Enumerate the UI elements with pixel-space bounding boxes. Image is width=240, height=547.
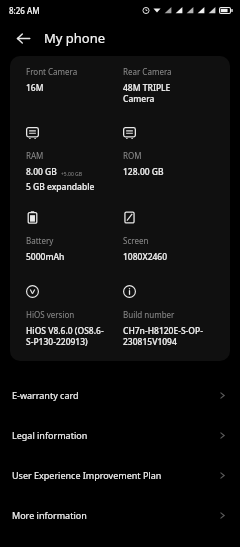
staticText: +5.00 GB [61, 171, 82, 178]
staticText: 8.00 GB [26, 166, 57, 178]
staticText: Rear Camera [123, 66, 172, 77]
staticText: More information [12, 509, 218, 521]
staticText: HiOS version [26, 309, 75, 320]
button[interactable]: User Experience Improvement Plan [0, 455, 240, 495]
button[interactable]: More information [0, 495, 240, 535]
staticText: Battery [26, 235, 54, 246]
button[interactable]: Legal information [0, 415, 240, 455]
button[interactable]: E-warranty card [0, 375, 240, 415]
staticText: Build number [123, 309, 175, 320]
staticText: User Experience Improvement Plan [12, 469, 218, 481]
staticText: 5000mAh [26, 251, 65, 263]
staticText: Screen [123, 235, 149, 246]
staticText: 8:26 AM [9, 5, 40, 16]
staticText: My phone [44, 29, 106, 47]
staticText: 16M [26, 82, 44, 94]
staticText: Legal information [12, 429, 218, 441]
staticText: 48M TRIPLE Camera [123, 82, 171, 104]
staticText: 128.00 GB [123, 166, 164, 178]
staticText: Front Camera [26, 66, 78, 77]
staticText: E-warranty card [12, 389, 218, 401]
staticText: 1080X2460 [123, 251, 168, 263]
staticText: ROM [123, 150, 142, 161]
staticText: CH7n-H8120E-S-OP- 230815V1094 [123, 325, 203, 347]
button[interactable]: Back [8, 23, 38, 53]
staticText: HiOS V8.6.0 (OS8.6- S-P130-220913) [26, 325, 104, 347]
staticText: RAM [26, 150, 44, 161]
staticText: 5 GB expandable [26, 181, 95, 193]
